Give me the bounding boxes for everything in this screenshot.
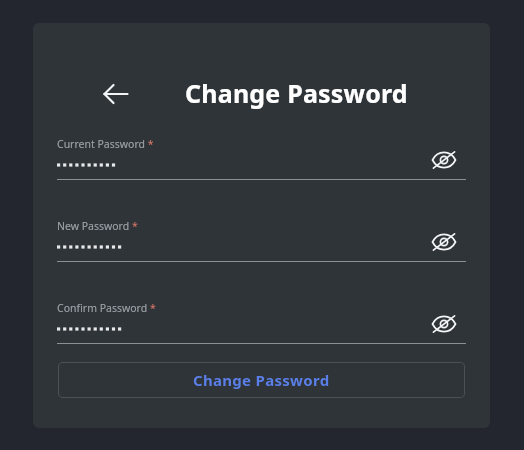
- button[interactable]: Back: [101, 79, 131, 109]
- staticText: Confirm Password *: [57, 301, 156, 315]
- button[interactable]: [57, 215, 466, 261]
- staticText: New Password *: [57, 219, 138, 233]
- button[interactable]: Toggle password visibility: [429, 227, 459, 257]
- staticText: Current Password *: [57, 137, 154, 151]
- button[interactable]: Toggle password visibility: [429, 145, 459, 175]
- staticText: Change Password: [185, 76, 408, 110]
- staticText: Change Password: [193, 370, 330, 390]
- button[interactable]: Toggle password visibility: [429, 309, 459, 339]
- button[interactable]: [57, 297, 466, 343]
- button[interactable]: Change Password: [58, 362, 465, 398]
- button[interactable]: [57, 133, 466, 179]
